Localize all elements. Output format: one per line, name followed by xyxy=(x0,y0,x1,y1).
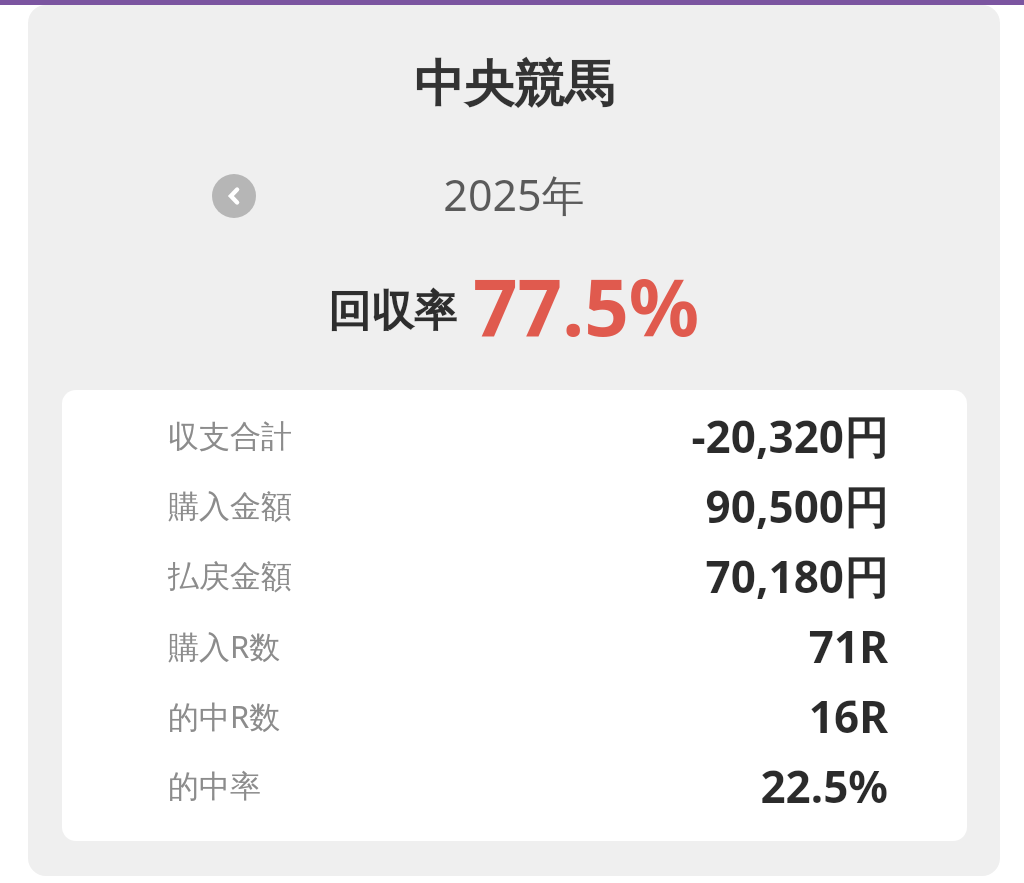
button[interactable]: 的中R数 xyxy=(62,681,967,751)
staticText: 77.5% xyxy=(473,253,700,353)
button[interactable]: 収支合計 xyxy=(62,401,967,471)
staticText: -20,320円 xyxy=(691,406,888,466)
staticText: 2025年 xyxy=(443,165,585,224)
staticText: 71R xyxy=(808,616,888,676)
staticText: 払戻金額 xyxy=(168,557,292,596)
button[interactable]: 購入金額 xyxy=(62,471,967,541)
staticText: 的中率 xyxy=(168,767,261,806)
staticText: 的中R数 xyxy=(168,695,281,737)
staticText: 22.5% xyxy=(760,756,888,816)
button[interactable]: Previous year xyxy=(212,174,256,218)
staticText: 16R xyxy=(808,686,888,746)
staticText: 購入R数 xyxy=(168,625,281,667)
button[interactable]: 払戻金額 xyxy=(62,541,967,611)
staticText: 購入金額 xyxy=(168,487,292,526)
button[interactable]: 的中率 xyxy=(62,751,967,821)
staticText: 中央競馬 xyxy=(414,53,614,116)
staticText: 70,180円 xyxy=(705,546,888,606)
staticText: 回収率 xyxy=(328,285,457,339)
staticText: 90,500円 xyxy=(705,476,888,536)
button[interactable]: 購入R数 xyxy=(62,611,967,681)
staticText: 収支合計 xyxy=(168,417,292,456)
